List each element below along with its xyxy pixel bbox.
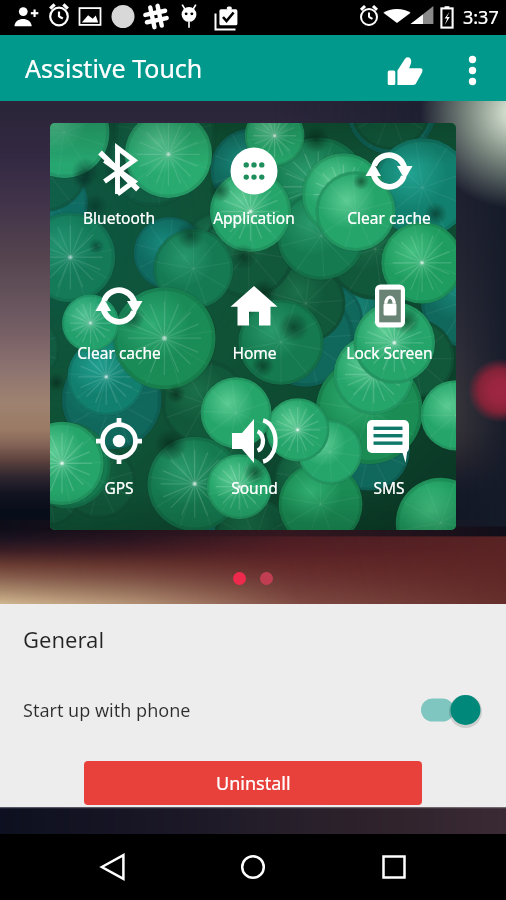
button[interactable]: Start up with phone <box>0 688 506 732</box>
button[interactable]: Bluetooth <box>52 127 186 258</box>
button[interactable]: GPS <box>52 397 186 528</box>
staticText: Sound <box>231 477 278 498</box>
button[interactable]: Uninstall <box>84 761 422 805</box>
button[interactable]: SMS <box>322 397 456 528</box>
staticText: Bluetooth <box>83 207 155 228</box>
button[interactable]: Page 2 <box>260 572 273 585</box>
staticText: General <box>23 624 105 654</box>
button[interactable]: Lock Screen <box>322 262 456 393</box>
button[interactable]: Sound <box>187 397 321 528</box>
staticText: Uninstall <box>216 771 291 796</box>
staticText: SMS <box>373 477 405 498</box>
staticText: Home <box>232 342 277 363</box>
button[interactable]: Start up with phone toggle <box>420 688 506 732</box>
staticText: Assistive Touch <box>25 51 203 85</box>
button[interactable]: Home <box>187 262 321 393</box>
button[interactable]: Back <box>81 834 145 900</box>
button[interactable]: Clear cache <box>52 262 186 393</box>
staticText: 3:37 <box>463 5 499 30</box>
staticText: Clear cache <box>77 342 161 363</box>
button[interactable]: Recents <box>362 834 426 900</box>
staticText: Clear cache <box>347 207 431 228</box>
staticText: Application <box>213 207 295 228</box>
button[interactable]: Application <box>187 127 321 258</box>
staticText: GPS <box>104 477 134 498</box>
button[interactable]: Page 1 <box>233 572 246 585</box>
staticText: Start up with phone <box>23 698 191 723</box>
button[interactable]: Clear cache <box>322 127 456 258</box>
button[interactable]: Home <box>221 834 285 900</box>
staticText: Lock Screen <box>346 342 433 363</box>
button[interactable]: More options <box>449 44 496 96</box>
button[interactable]: Rate app <box>376 46 433 98</box>
